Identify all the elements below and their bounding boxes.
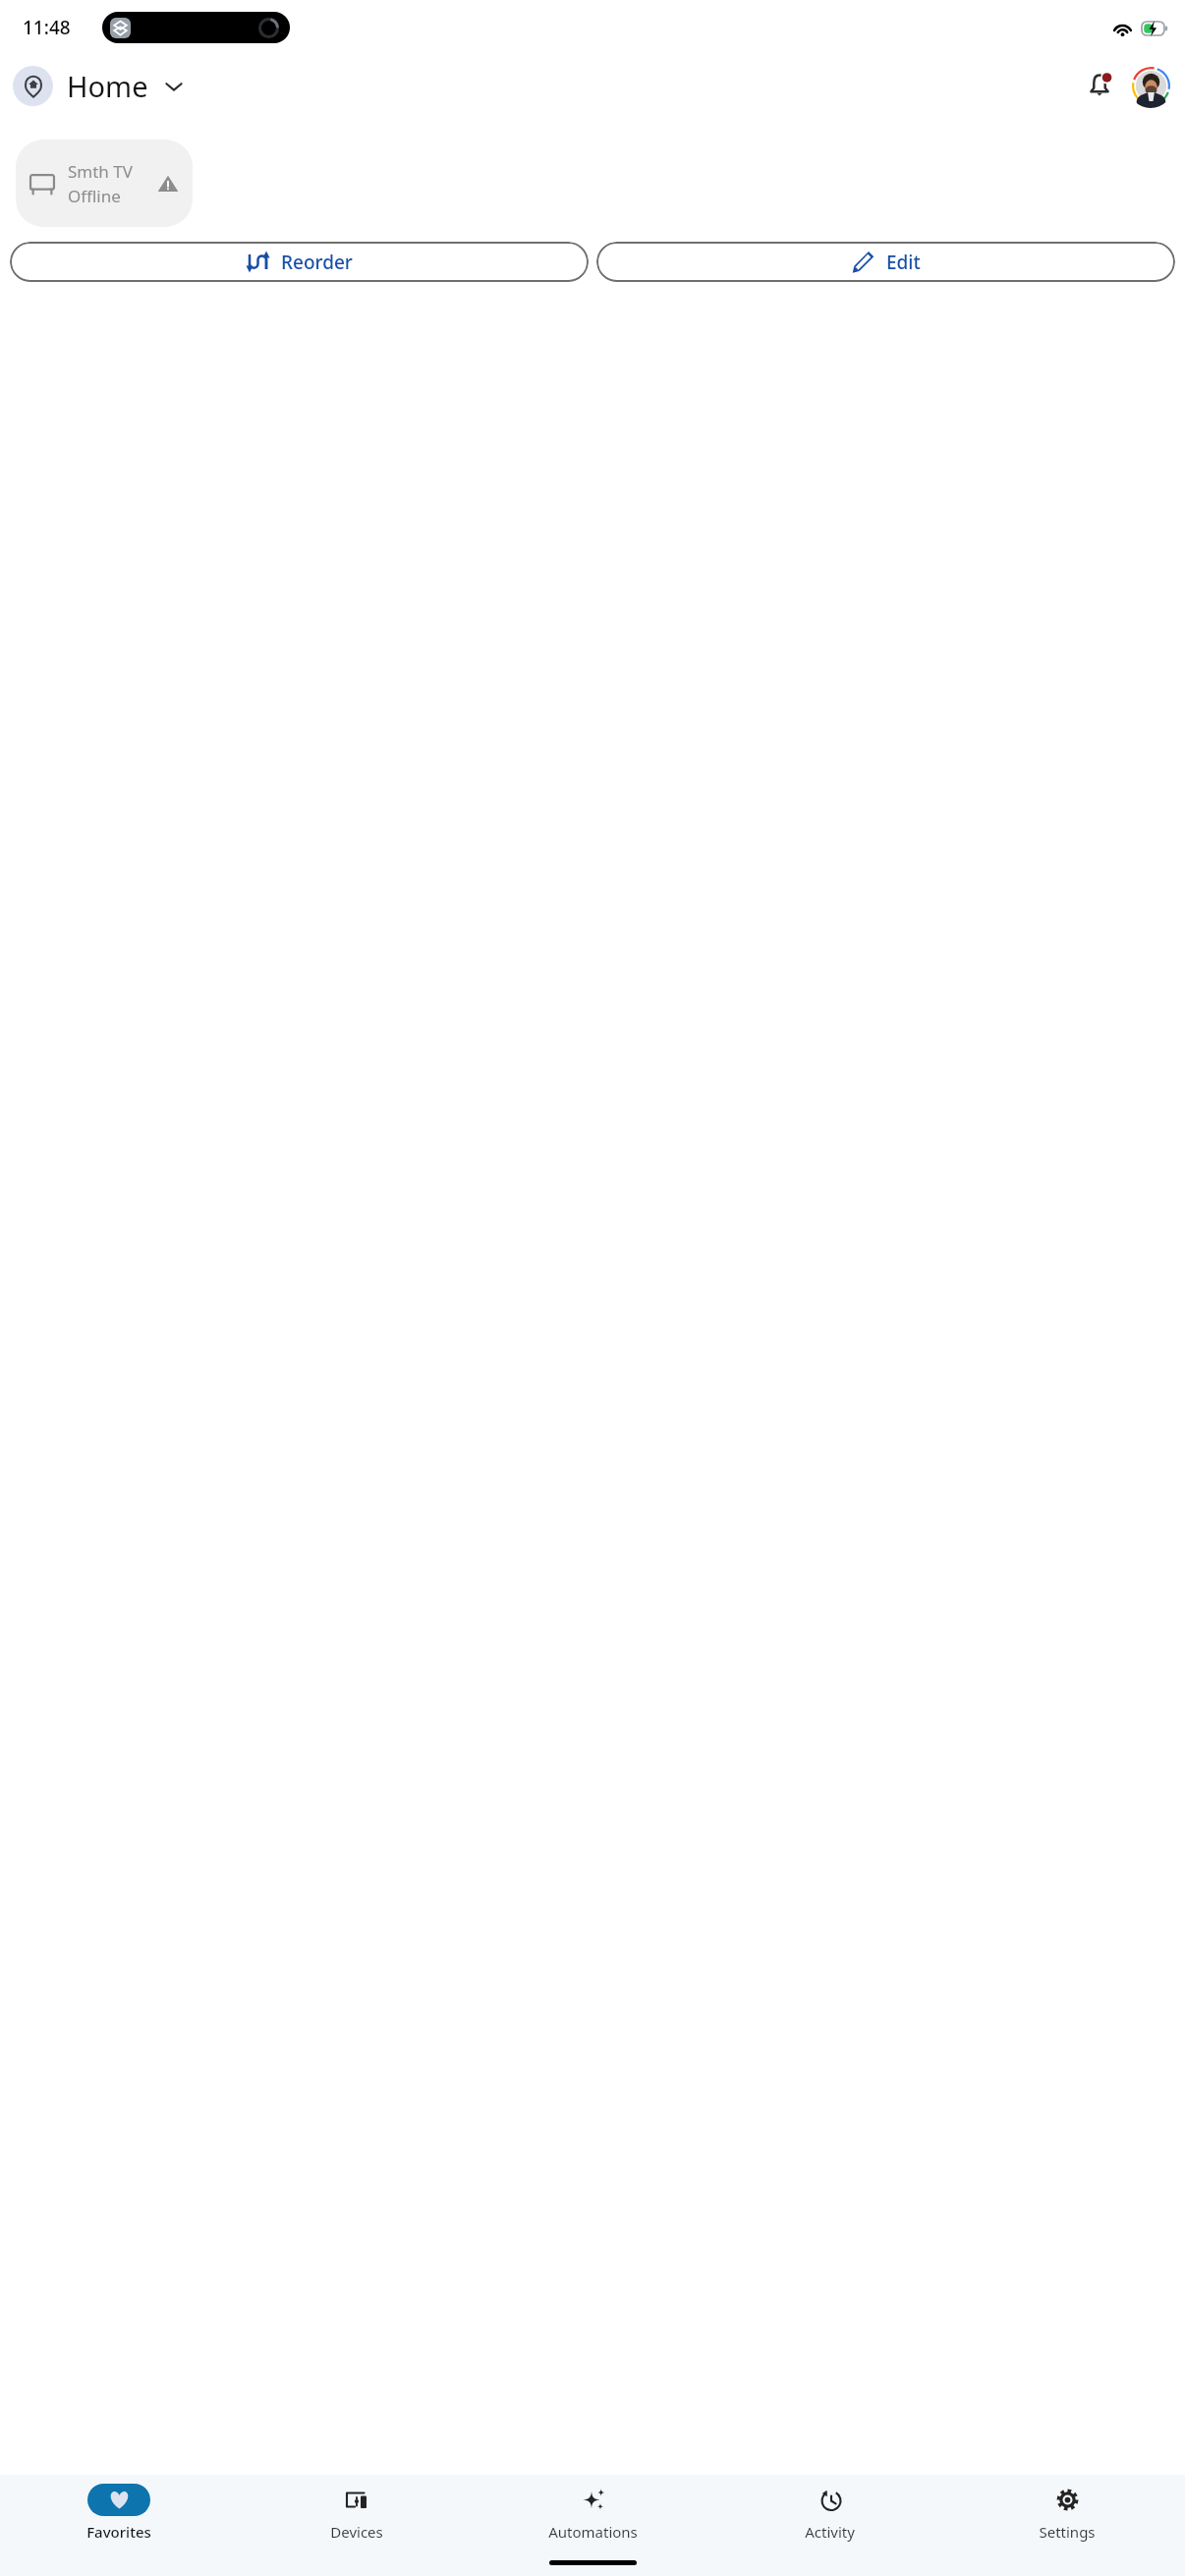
staticText: Favorites (86, 2522, 151, 2542)
button[interactable]: Reorder (10, 242, 589, 282)
button[interactable]: Smth TV (16, 140, 193, 227)
staticText: Edit (886, 250, 921, 275)
button[interactable]: Edit (596, 242, 1175, 282)
button[interactable]: Settings (948, 2475, 1185, 2553)
button[interactable]: Activity (711, 2475, 948, 2553)
staticText: Settings (1039, 2522, 1096, 2542)
button[interactable]: Home (10, 63, 187, 109)
staticText: Reorder (281, 250, 353, 275)
staticText: 11:48 (23, 15, 71, 40)
staticText: Activity (805, 2522, 855, 2542)
button[interactable]: Automations (475, 2475, 711, 2553)
staticText: Smth TV (68, 160, 133, 183)
staticText: Home (67, 67, 148, 105)
staticText: Offline (68, 185, 121, 207)
button[interactable]: Devices (238, 2475, 475, 2553)
staticText: Automations (548, 2522, 638, 2542)
button[interactable]: Notifications (1077, 63, 1122, 108)
button[interactable]: Favorites (0, 2475, 238, 2553)
button[interactable]: Account (1128, 63, 1173, 108)
staticText: Devices (330, 2522, 383, 2542)
